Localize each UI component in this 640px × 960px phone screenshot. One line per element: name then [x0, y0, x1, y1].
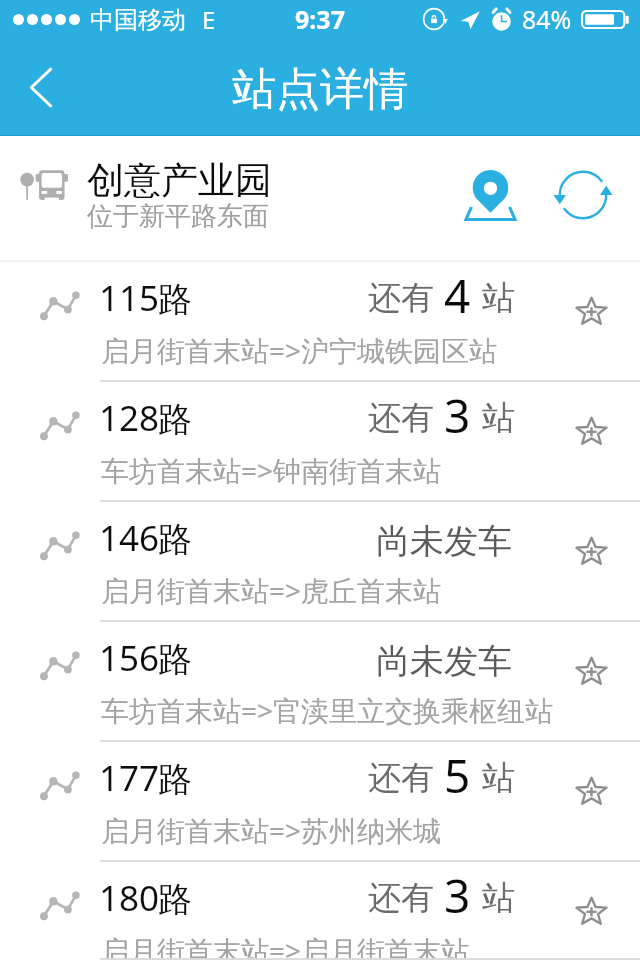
staticText: 还有 — [368, 397, 434, 439]
staticText: 启月街首末站=>启月街首末站 — [101, 931, 470, 960]
button[interactable]: Add to favorites — [563, 762, 619, 818]
button[interactable]: Add to favorites — [563, 282, 619, 338]
staticText: 路 — [158, 638, 192, 681]
staticText: 180 — [99, 874, 160, 922]
staticText: 156 — [99, 634, 160, 682]
staticText: 84% — [522, 2, 572, 36]
staticText: 车坊首末站=>官渎里立交换乘枢纽站 — [101, 691, 554, 729]
button[interactable]: 128 — [0, 382, 640, 502]
button[interactable]: 146 — [0, 502, 640, 622]
staticText: 128 — [99, 394, 160, 442]
staticText: 还有 — [368, 277, 434, 319]
staticText: 创意产业园 — [87, 157, 272, 204]
staticText: 站 — [482, 877, 515, 919]
staticText: 启月街首末站=>沪宁城铁园区站 — [101, 331, 498, 369]
button[interactable]: 115 — [0, 262, 640, 382]
button[interactable]: Refresh — [550, 163, 616, 227]
staticText: 尚未发车 — [376, 640, 512, 683]
button[interactable]: Add to favorites — [563, 402, 619, 458]
button[interactable]: Show on map — [458, 162, 524, 228]
staticText: 还有 — [368, 877, 434, 919]
staticText: 位于新平路东面 — [87, 200, 269, 233]
staticText: 中国移动 — [90, 5, 186, 35]
staticText: 路 — [158, 758, 192, 801]
staticText: 路 — [158, 878, 192, 921]
staticText: 5 — [444, 744, 471, 807]
staticText: 站 — [482, 397, 515, 439]
staticText: E — [202, 3, 216, 36]
staticText: 3 — [444, 384, 471, 447]
staticText: 启月街首末站=>苏州纳米城 — [101, 811, 442, 849]
button[interactable]: 156 — [0, 622, 640, 742]
staticText: 146 — [99, 514, 160, 562]
staticText: 路 — [158, 518, 192, 561]
staticText: 站 — [482, 757, 515, 799]
staticText: 站点详情 — [232, 62, 408, 117]
staticText: 站 — [482, 277, 515, 319]
staticText: 4 — [444, 264, 471, 327]
button[interactable]: Back — [0, 40, 86, 136]
staticText: 3 — [444, 864, 471, 927]
button[interactable]: Add to favorites — [563, 522, 619, 578]
staticText: 尚未发车 — [376, 520, 512, 563]
button[interactable]: Add to favorites — [563, 882, 619, 938]
staticText: 115 — [99, 274, 160, 322]
staticText: 还有 — [368, 757, 434, 799]
button[interactable]: 177 — [0, 742, 640, 862]
staticText: 路 — [158, 398, 192, 441]
staticText: 启月街首末站=>虎丘首末站 — [101, 571, 442, 609]
staticText: 路 — [158, 278, 192, 321]
staticText: 车坊首末站=>钟南街首末站 — [101, 451, 442, 489]
button[interactable]: 180 — [0, 862, 640, 960]
staticText: 9:37 — [295, 2, 345, 36]
button[interactable]: Add to favorites — [563, 642, 619, 698]
staticText: 177 — [99, 754, 160, 802]
